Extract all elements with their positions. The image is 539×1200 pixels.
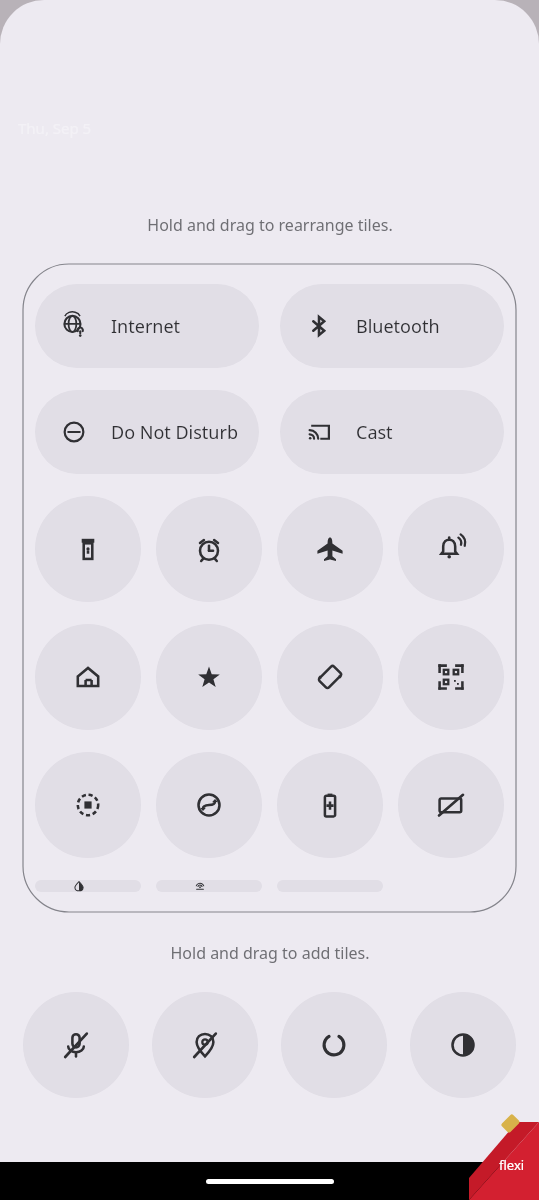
button[interactable]: Contrast <box>410 992 516 1098</box>
button[interactable]: Location off <box>152 992 258 1098</box>
button[interactable]: Screen cast off <box>398 752 504 858</box>
button[interactable]: Scan QR code <box>398 624 504 730</box>
button[interactable]: Screen record <box>35 752 141 858</box>
button[interactable]: Battery saver <box>277 752 383 858</box>
staticText: Cast <box>356 420 393 445</box>
staticText: Do Not Disturb <box>111 420 238 445</box>
staticText: Internet <box>111 314 181 339</box>
button[interactable]: Mute microphone <box>23 992 129 1098</box>
button[interactable]: Cast <box>280 390 504 474</box>
button[interactable]: Color inversion <box>35 880 141 892</box>
button[interactable]: Data saver <box>156 752 262 858</box>
button[interactable]: Alarm <box>156 496 262 602</box>
button[interactable]: Airplane mode <box>277 496 383 602</box>
button[interactable]: Ring mode <box>398 496 504 602</box>
button[interactable]: Nearby share <box>156 880 262 892</box>
staticText: flexi <box>499 1156 525 1174</box>
button[interactable]: Do Not Disturb <box>35 390 259 474</box>
staticText: Bluetooth <box>356 314 440 339</box>
staticText: Hold and drag to rearrange tiles. <box>147 214 393 236</box>
button[interactable]: Internet <box>35 284 259 368</box>
button[interactable]: Favorites <box>156 624 262 730</box>
button[interactable]: Bluetooth <box>280 284 504 368</box>
button[interactable]: Flashlight <box>35 496 141 602</box>
button[interactable]: Refresh <box>281 992 387 1098</box>
button[interactable]: Auto rotate <box>277 624 383 730</box>
staticText: Hold and drag to add tiles. <box>170 942 370 964</box>
button[interactable]: Home <box>35 624 141 730</box>
